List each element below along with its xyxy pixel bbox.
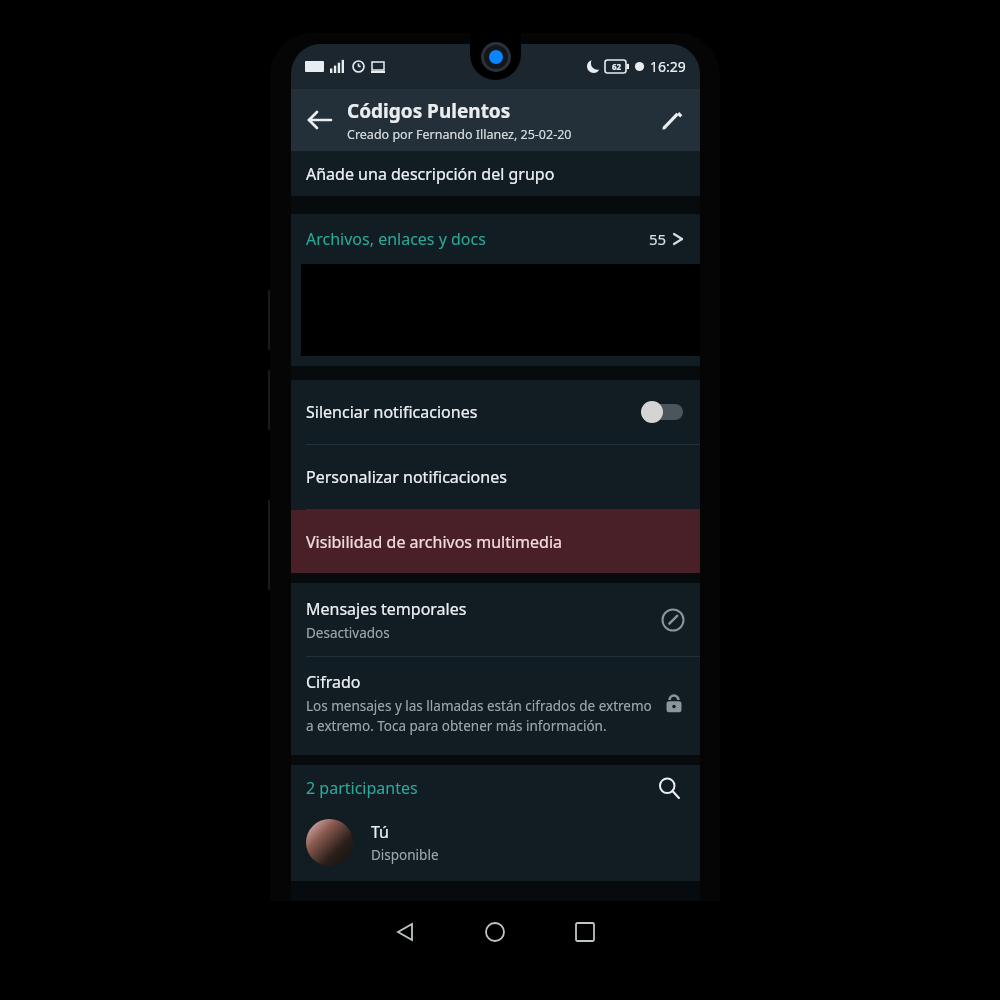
staticText: Mensajes temporales (306, 598, 467, 620)
staticText: Desactivados (306, 624, 390, 642)
button[interactable]: Back (291, 92, 347, 148)
staticText: Los mensajes y las llamadas están cifrad… (306, 697, 653, 735)
button[interactable]: Edit (644, 92, 700, 148)
staticText: 62 (612, 61, 622, 72)
staticText: Cifrado (306, 671, 361, 693)
staticText: Personalizar notificaciones (306, 466, 507, 488)
staticText: 55 (649, 229, 667, 249)
staticText: 16:29 (650, 57, 686, 76)
button[interactable]: Cifrado (291, 657, 700, 749)
button[interactable]: Mensajes temporales (291, 583, 700, 656)
staticText: Disponible (371, 846, 439, 864)
staticText: Visibilidad de archivos multimedia (306, 531, 562, 553)
staticText: Añade una descripción del grupo (306, 163, 555, 185)
button[interactable]: Back (360, 908, 450, 956)
staticText: Creado por Fernando Illanez, 25-02-20 (347, 126, 572, 143)
button[interactable]: Archivos, enlaces y docs (291, 214, 700, 264)
button[interactable]: Search (653, 772, 685, 804)
staticText: Códigos Pulentos (347, 98, 511, 124)
button[interactable]: Home (450, 908, 540, 956)
button[interactable]: Tú (291, 811, 700, 873)
button[interactable]: Personalizar notificaciones (291, 445, 700, 509)
staticText: Archivos, enlaces y docs (306, 228, 649, 250)
button[interactable]: Visibilidad de archivos multimedia (291, 510, 700, 573)
button[interactable]: Recents (540, 908, 630, 956)
staticText: Tú (371, 821, 389, 843)
staticText: 2 participantes (306, 777, 653, 799)
staticText: Silenciar notificaciones (306, 401, 641, 423)
button[interactable]: Silenciar notificaciones (291, 380, 700, 444)
